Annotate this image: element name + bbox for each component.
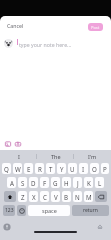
- staticText: A: [10, 179, 14, 187]
- button[interactable]: R: [35, 163, 44, 174]
- button[interactable]: Shift: [4, 191, 16, 202]
- staticText: V: [54, 193, 58, 201]
- staticText: I: [82, 165, 85, 173]
- button[interactable]: A: [7, 177, 16, 188]
- button[interactable]: The: [37, 150, 74, 163]
- button[interactable]: N: [73, 191, 82, 202]
- staticText: T: [49, 165, 53, 173]
- button[interactable]: G: [51, 177, 60, 188]
- staticText: Z: [21, 193, 25, 201]
- button[interactable]: Add photo: [5, 141, 11, 147]
- button[interactable]: Backspace: [95, 191, 107, 202]
- staticText: Cancel: [7, 22, 24, 29]
- staticText: Post: [91, 25, 100, 30]
- button[interactable]: Hide keyboard: [96, 223, 104, 231]
- staticText: R: [38, 165, 42, 173]
- button[interactable]: Q: [2, 163, 11, 174]
- staticText: H: [64, 179, 69, 187]
- button[interactable]: T: [46, 163, 55, 174]
- staticText: M: [86, 193, 92, 201]
- staticText: O: [92, 165, 97, 173]
- staticText: type your note here...: [19, 41, 72, 48]
- staticText: B: [64, 193, 69, 201]
- button[interactable]: O: [90, 163, 99, 174]
- button[interactable]: Cancel: [5, 19, 26, 32]
- button[interactable]: M: [84, 191, 93, 202]
- button[interactable]: H: [62, 177, 71, 188]
- staticText: return: [83, 207, 98, 214]
- staticText: K: [87, 179, 91, 187]
- button[interactable]: Dictate: [3, 223, 11, 231]
- staticText: E: [27, 165, 31, 173]
- staticText: Y: [60, 165, 64, 173]
- staticText: G: [53, 179, 58, 187]
- button[interactable]: Y: [57, 163, 66, 174]
- button[interactable]: 123: [3, 205, 15, 216]
- button[interactable]: Post: [88, 23, 103, 31]
- staticText: D: [31, 179, 36, 187]
- staticText: L: [98, 179, 102, 187]
- button[interactable]: P: [101, 163, 109, 174]
- staticText: The: [51, 153, 61, 160]
- staticText: I: [18, 153, 20, 160]
- staticText: I'm: [88, 153, 97, 160]
- button[interactable]: J: [73, 177, 82, 188]
- button[interactable]: Take photo: [15, 141, 21, 147]
- staticText: S: [21, 179, 25, 187]
- staticText: Q: [4, 165, 9, 173]
- button[interactable]: I: [79, 163, 88, 174]
- button[interactable]: C: [40, 191, 49, 202]
- staticText: space: [42, 207, 57, 214]
- button[interactable]: space: [28, 205, 70, 216]
- button[interactable]: L: [95, 177, 104, 188]
- staticText: C: [43, 193, 47, 201]
- button[interactable]: Emoji: [17, 205, 26, 216]
- button[interactable]: S: [18, 177, 27, 188]
- button[interactable]: K: [84, 177, 93, 188]
- button[interactable]: I: [0, 150, 37, 163]
- button[interactable]: Z: [18, 191, 27, 202]
- button[interactable]: D: [29, 177, 38, 188]
- button[interactable]: B: [62, 191, 71, 202]
- staticText: P: [103, 165, 107, 173]
- staticText: N: [75, 193, 80, 201]
- staticText: W: [15, 165, 21, 173]
- staticText: X: [32, 193, 36, 201]
- staticText: 123: [5, 207, 14, 214]
- button[interactable]: U: [68, 163, 77, 174]
- button[interactable]: W: [13, 163, 22, 174]
- button[interactable]: E: [24, 163, 33, 174]
- staticText: F: [43, 179, 47, 187]
- button[interactable]: F: [40, 177, 49, 188]
- button[interactable]: return: [72, 205, 109, 216]
- button[interactable]: I'm: [74, 150, 111, 163]
- staticText: U: [70, 165, 75, 173]
- button[interactable]: V: [51, 191, 60, 202]
- button[interactable]: X: [29, 191, 38, 202]
- staticText: J: [77, 179, 79, 187]
